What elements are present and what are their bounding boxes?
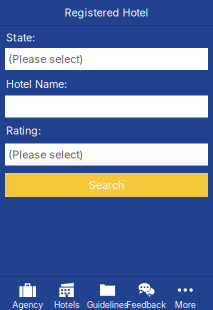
staticText: Guidelines [87,300,129,310]
button[interactable]: (Please select) [5,48,208,70]
staticText: Hotel Name: [6,77,67,90]
staticText: (Please select) [8,52,83,65]
button[interactable]: Agency [8,276,47,310]
button[interactable]: Feedback [126,276,166,310]
staticText: Rating: [6,124,41,137]
staticText: More [175,300,196,310]
button[interactable]: More [166,276,205,310]
button[interactable]: Guidelines [87,276,126,310]
staticText: Registered Hotel [64,6,148,19]
button[interactable]: Hotels [47,276,87,310]
button[interactable]: (Please select) [5,143,208,165]
button[interactable]: Search [5,173,208,197]
staticText: (Please select) [8,148,83,161]
button[interactable] [5,95,208,117]
staticText: Hotels [54,300,80,310]
staticText: Search [89,178,124,191]
staticText: Agency [12,300,43,310]
staticText: State: [6,31,35,44]
staticText: Feedback [126,300,166,310]
